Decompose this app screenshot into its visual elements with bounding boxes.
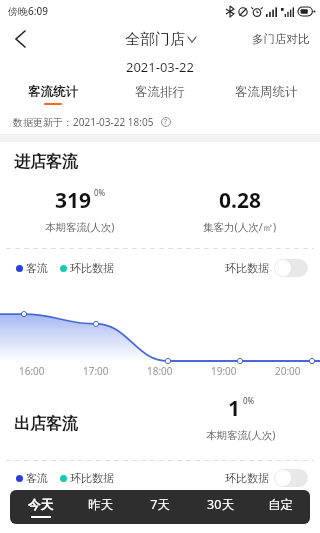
button[interactable]: 自定 — [250, 490, 310, 524]
staticText: 自定 — [268, 497, 293, 513]
button[interactable]: 7天 — [130, 490, 190, 524]
staticText: 今天 — [28, 497, 53, 513]
staticText: 1 — [228, 394, 241, 423]
staticText: 多门店对比 — [252, 32, 310, 46]
staticText: 数据更新于：2021-03-22 18:05 — [13, 115, 154, 129]
staticText: 19:00 — [211, 364, 237, 378]
button[interactable]: Back — [0, 22, 40, 56]
staticText: 客流排行 — [135, 84, 185, 100]
staticText: 集客力(人次/㎡) — [203, 220, 277, 234]
staticText: 319 — [55, 186, 92, 215]
button[interactable]: 全部门店 — [125, 30, 196, 49]
staticText: 客流 — [26, 471, 48, 485]
button[interactable]: 客流周统计 — [213, 78, 320, 110]
button[interactable]: Info — [159, 115, 173, 129]
staticText: 0% — [243, 395, 255, 406]
button[interactable]: 昨天 — [70, 490, 130, 524]
staticText: 本期客流(人次) — [45, 220, 115, 234]
staticText: 昨天 — [88, 497, 113, 513]
staticText: 环比数据 — [225, 471, 269, 485]
staticText: 18:00 — [147, 364, 173, 378]
staticText: 环比数据 — [70, 471, 114, 485]
staticText: 客流统计 — [28, 84, 78, 100]
staticText: ? — [164, 117, 168, 127]
button[interactable]: 30天 — [190, 490, 250, 524]
staticText: 进店客流 — [14, 152, 78, 172]
button[interactable]: 环比数据 — [225, 469, 308, 487]
staticText: 0% — [94, 187, 106, 198]
staticText: 0.28 — [219, 186, 261, 215]
staticText: 出店客流 — [14, 414, 78, 434]
staticText: 2021-03-22 — [126, 58, 194, 76]
button[interactable]: 多门店对比 — [242, 26, 320, 52]
staticText: 16:00 — [19, 364, 45, 378]
staticText: 客流 — [26, 261, 48, 275]
staticText: 客流周统计 — [235, 84, 298, 100]
button[interactable]: 客流统计 — [0, 78, 106, 110]
staticText: 30天 — [207, 496, 234, 513]
staticText: 傍晚6:09 — [8, 4, 48, 18]
button[interactable]: 客流排行 — [106, 78, 213, 110]
staticText: 本期客流(人次) — [206, 428, 276, 442]
staticText: 20:00 — [275, 364, 301, 378]
staticText: 17:00 — [83, 364, 109, 378]
staticText: 环比数据 — [225, 261, 269, 275]
staticText: 全部门店 — [125, 30, 185, 49]
staticText: 7天 — [150, 496, 170, 513]
button[interactable]: 环比数据 — [225, 259, 308, 277]
staticText: 环比数据 — [70, 261, 114, 275]
button[interactable]: 今天 — [10, 490, 70, 524]
